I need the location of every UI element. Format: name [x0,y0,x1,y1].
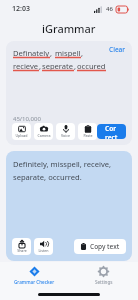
staticText: Grammar Checker [14,279,55,285]
staticText: Share [17,248,27,253]
button[interactable]: Voice [56,123,75,140]
staticText: Settings [95,279,113,285]
button[interactable]: Camera [34,123,53,140]
button[interactable]: Correct [97,124,126,139]
staticText: Listen [38,248,49,253]
staticText: Voice [61,133,70,138]
staticText: recieve [13,61,39,71]
staticText: , [39,61,42,71]
button[interactable]: Listen [34,238,53,255]
staticText: 46 [106,5,113,13]
button[interactable]: Upload [12,123,31,140]
staticText: occured [77,61,106,71]
staticText: Paste [83,133,93,138]
button[interactable]: Paste [78,123,97,140]
staticText: Upload [15,133,28,138]
button[interactable]: Grammar Checker [0,262,69,288]
staticText: mispell [55,48,81,58]
button[interactable]: Share [12,238,31,255]
staticText: Correct [105,124,118,139]
staticText: 12:03 [12,4,30,14]
staticText: , [81,48,84,58]
staticText: separate, occurred. [13,172,82,182]
staticText: Copy text [90,242,120,251]
staticText: Definitely, misspell, receive, [13,159,112,169]
staticText: 45/10,000 [13,115,41,123]
button[interactable]: Settings [69,262,138,288]
button[interactable]: Copy text [74,239,126,254]
staticText: , [74,61,77,71]
button[interactable]: Clear [103,41,132,58]
staticText: , [50,48,55,58]
staticText: Definately [13,48,50,58]
staticText: seperate [42,61,74,71]
staticText: iGrammar [42,21,96,36]
staticText: Camera [37,133,51,138]
